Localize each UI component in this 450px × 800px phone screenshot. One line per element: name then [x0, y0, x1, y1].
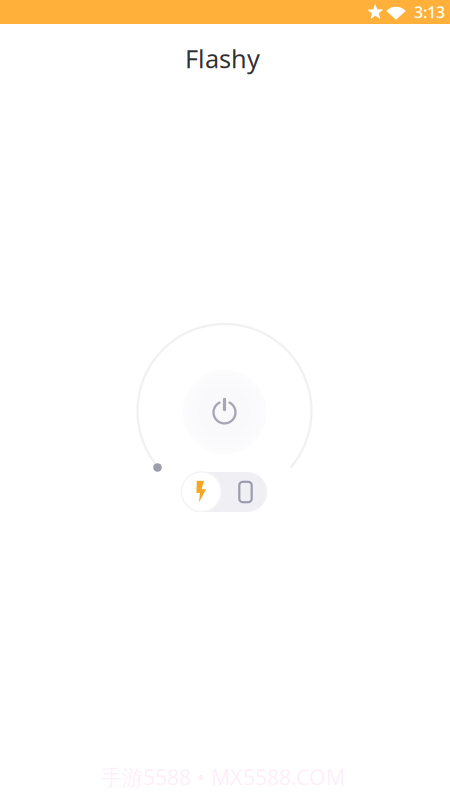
button[interactable]: Power: [182, 370, 266, 454]
button[interactable]: Flashlight mode: [180, 471, 222, 513]
staticText: Flashy: [185, 42, 260, 75]
button[interactable]: Brightness: [153, 463, 162, 472]
button[interactable]: Screen light mode: [224, 472, 267, 512]
staticText: 手游5588 • MX5588.COM: [101, 763, 345, 791]
staticText: 3:13: [414, 1, 445, 23]
